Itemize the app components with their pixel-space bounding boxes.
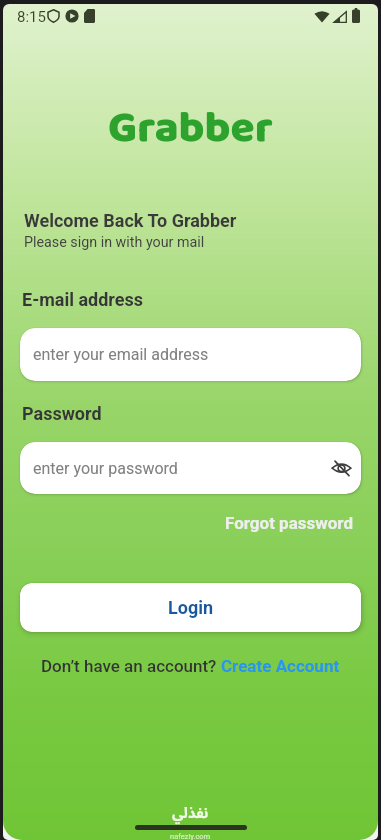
button[interactable]: enter your email address	[20, 328, 361, 381]
button[interactable]: Forgot password	[225, 513, 353, 533]
staticText: Login	[168, 597, 214, 618]
button[interactable]: enter your password	[20, 442, 361, 494]
staticText: Password	[22, 403, 102, 424]
staticText: enter your password	[33, 459, 178, 478]
staticText: نفذلي	[172, 798, 209, 829]
button[interactable]: Login	[20, 583, 361, 632]
staticText: E-mail address	[22, 289, 143, 310]
staticText: Please sign in with your mail	[24, 234, 205, 251]
staticText: nafezly.com	[170, 832, 211, 840]
staticText: 8:15	[17, 8, 46, 26]
button[interactable]: Create Account	[221, 656, 340, 676]
staticText: Don’t have an account?	[41, 656, 221, 676]
staticText: Welcome Back To Grabber	[24, 210, 237, 231]
staticText: Grabber	[108, 94, 273, 164]
staticText: enter your email address	[33, 345, 209, 364]
